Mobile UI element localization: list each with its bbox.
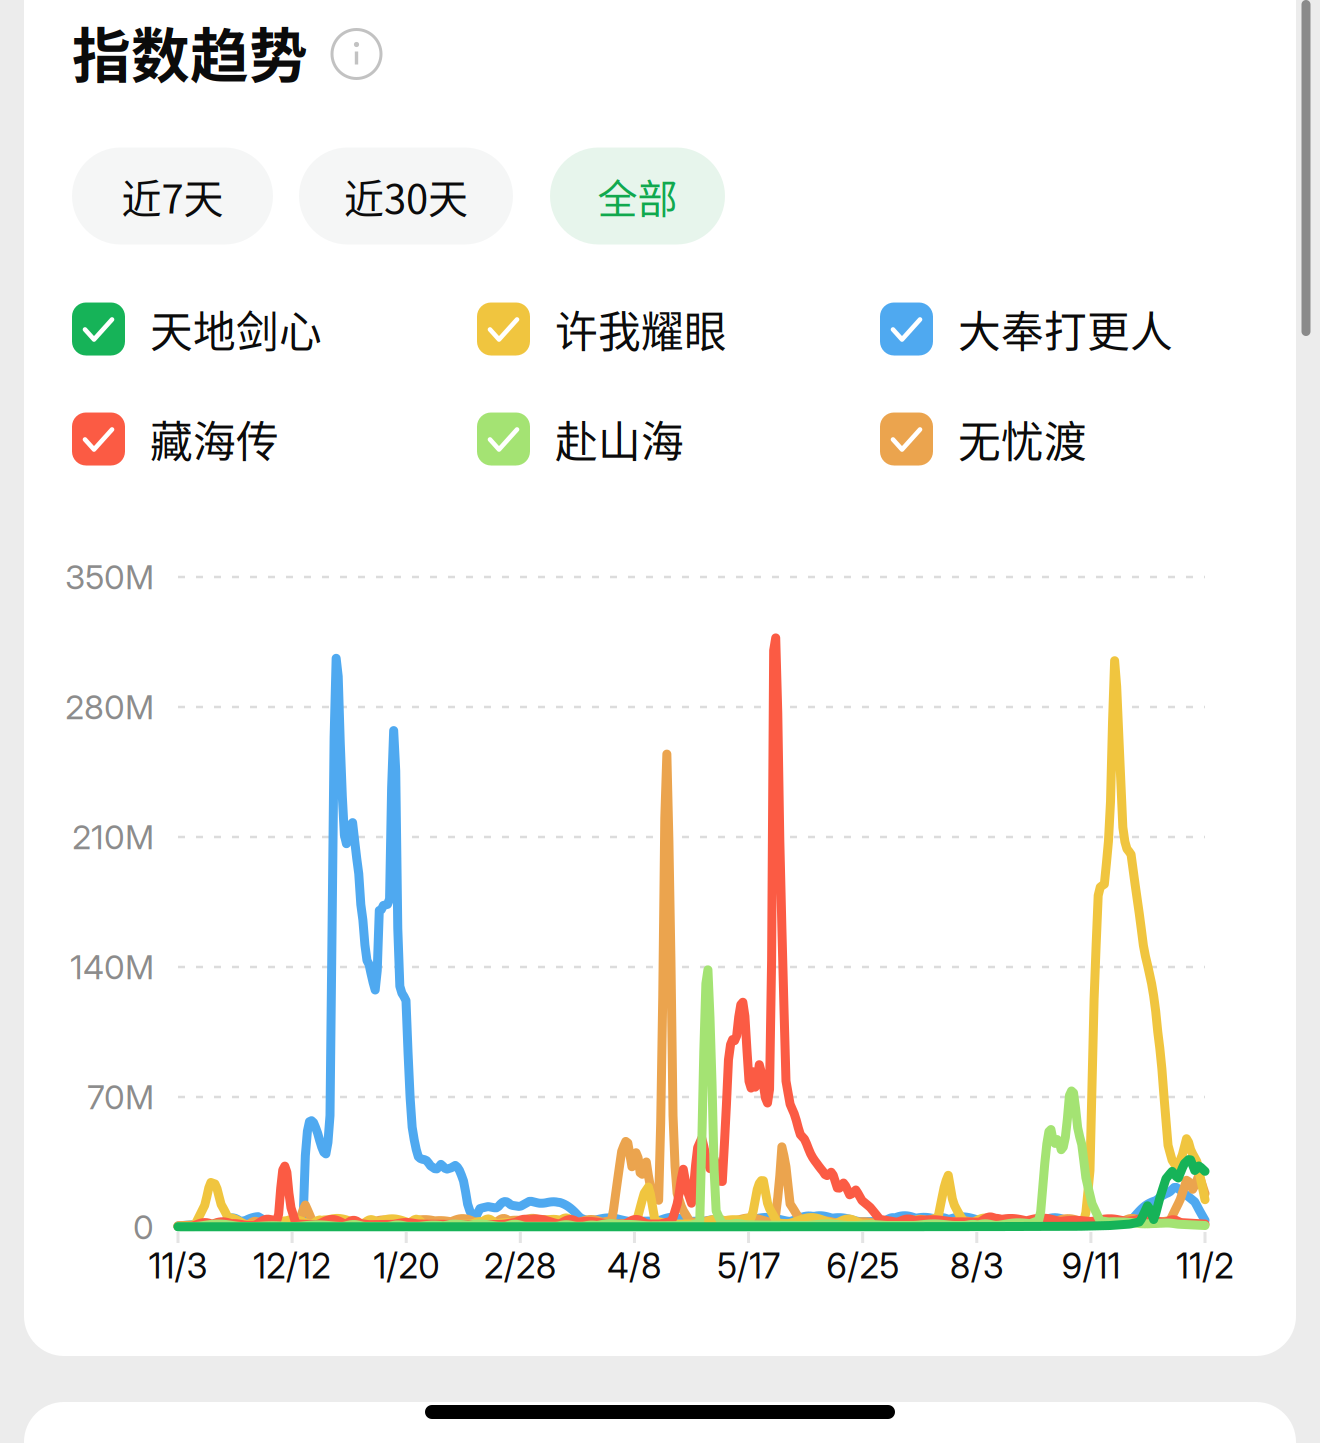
button[interactable]: 藏海传: [72, 408, 462, 470]
staticText: 大奉打更人: [958, 298, 1173, 360]
staticText: 藏海传: [150, 408, 279, 470]
staticText: 2/28: [484, 1245, 557, 1287]
staticText: 近7天: [121, 167, 223, 225]
staticText: 指数趋势: [72, 9, 308, 94]
button[interactable]: 许我耀眼: [477, 298, 867, 360]
button[interactable]: 大奉打更人: [880, 298, 1270, 360]
staticText: 280M: [65, 687, 154, 727]
staticText: 8/3: [950, 1245, 1004, 1287]
staticText: 12/12: [253, 1245, 331, 1287]
staticText: 5/17: [717, 1245, 780, 1287]
button[interactable]: 天地剑心: [72, 298, 462, 360]
staticText: 70M: [87, 1077, 154, 1117]
button[interactable]: 关于指数趋势: [332, 29, 381, 78]
staticText: 9/11: [1061, 1245, 1120, 1287]
staticText: 210M: [72, 817, 154, 857]
staticText: 6/25: [826, 1245, 899, 1287]
staticText: 1/20: [373, 1245, 439, 1287]
staticText: 140M: [70, 947, 154, 987]
button[interactable]: 赴山海: [477, 408, 867, 470]
staticText: 11/3: [148, 1245, 207, 1287]
button[interactable]: 近7天: [72, 147, 273, 244]
button[interactable]: 无忧渡: [880, 408, 1270, 470]
staticText: 天地剑心: [150, 298, 322, 360]
staticText: 无忧渡: [958, 408, 1087, 470]
staticText: 350M: [65, 557, 154, 597]
staticText: 0: [133, 1207, 154, 1247]
staticText: 全部: [597, 167, 677, 225]
staticText: 4/8: [607, 1245, 662, 1287]
button[interactable]: 全部: [550, 147, 725, 244]
staticText: 赴山海: [555, 408, 684, 470]
staticText: 11/2: [1176, 1245, 1234, 1287]
staticText: 许我耀眼: [555, 298, 727, 360]
staticText: 近30天: [344, 167, 468, 225]
button[interactable]: 近30天: [299, 147, 513, 244]
